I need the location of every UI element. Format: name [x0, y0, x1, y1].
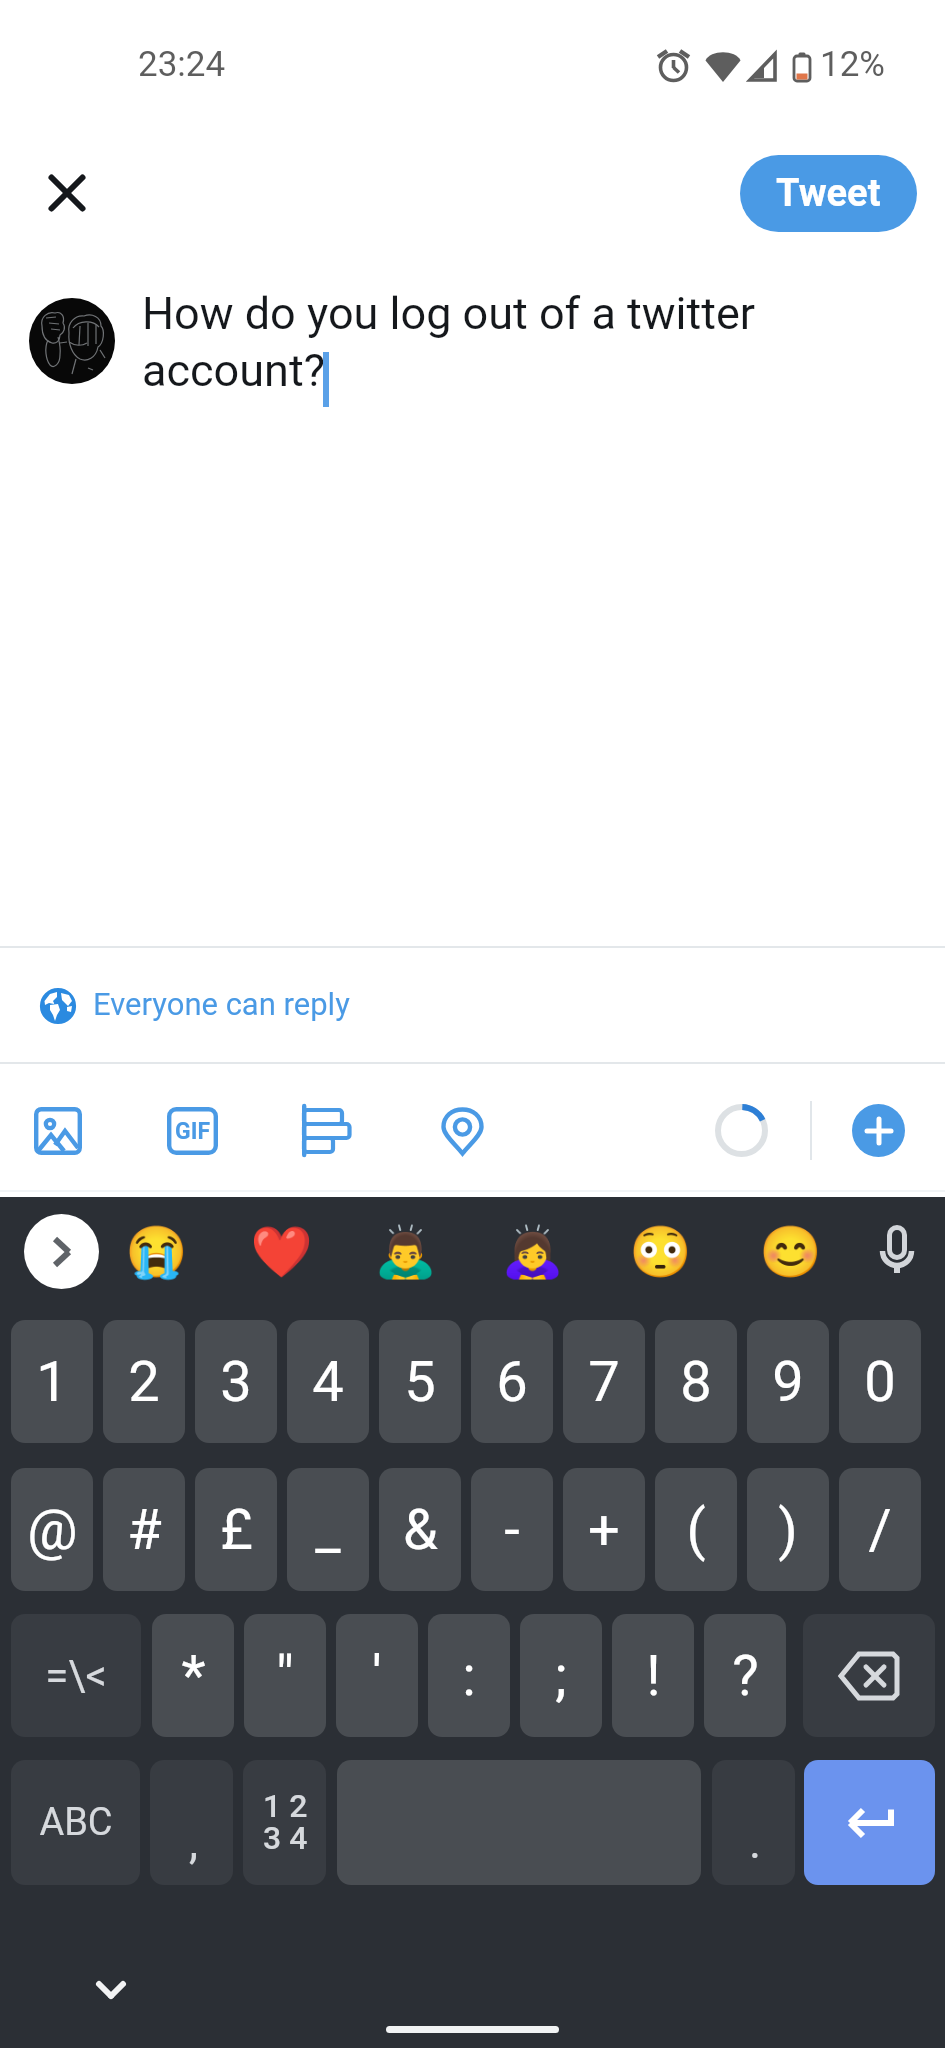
button[interactable]: . [712, 1760, 795, 1885]
button[interactable]: Add GIF [158, 1097, 226, 1165]
staticText: # [127, 1497, 162, 1563]
button[interactable]: Voice input [861, 1214, 932, 1285]
staticText: @ [27, 1497, 78, 1563]
staticText: ( [686, 1497, 706, 1563]
staticText: 2 [128, 1349, 160, 1415]
button[interactable]: @ [11, 1468, 93, 1591]
button[interactable]: + [563, 1468, 645, 1591]
staticText: ABC [39, 1800, 113, 1845]
staticText: 😭 [125, 1223, 188, 1282]
staticText: =\< [45, 1651, 107, 1700]
staticText: 🙇‍♀️ [501, 1223, 564, 1282]
staticText: : [462, 1643, 476, 1709]
button[interactable]: ABC [11, 1760, 140, 1885]
button[interactable]: Numbers [243, 1760, 326, 1885]
button[interactable]: " [244, 1614, 326, 1737]
button[interactable]: * [152, 1614, 234, 1737]
staticText: + [588, 1497, 620, 1563]
button[interactable]: Add poll [294, 1097, 362, 1165]
button[interactable]: Backspace [803, 1614, 935, 1737]
button[interactable]: 3 [195, 1320, 277, 1443]
button[interactable]: 0 [839, 1320, 921, 1443]
button[interactable]: # [103, 1468, 185, 1591]
button[interactable]: 5 [379, 1320, 461, 1443]
button[interactable]: Profile picture [29, 298, 115, 384]
button[interactable]: 2 [103, 1320, 185, 1443]
button[interactable]: £ [195, 1468, 277, 1591]
button[interactable]: Everyone can reply [0, 948, 945, 1062]
button[interactable]: 🙇‍♀️ [496, 1216, 568, 1288]
staticText: 23:24 [138, 44, 226, 85]
staticText: _ [315, 1497, 341, 1563]
staticText: Tweet [776, 171, 881, 216]
staticText: How do you log out of a twitter account? [142, 287, 756, 397]
staticText: ' [372, 1643, 382, 1709]
button[interactable]: 🙇‍♂️ [369, 1216, 441, 1288]
staticText: Everyone can reply [93, 986, 350, 1022]
staticText: 😊 [759, 1223, 822, 1282]
button[interactable]: ) [747, 1468, 829, 1591]
button[interactable]: 😭 [120, 1216, 192, 1288]
button[interactable]: Add location [428, 1097, 496, 1165]
staticText: 5 [404, 1349, 436, 1415]
button[interactable]: More emoji [24, 1214, 99, 1289]
staticText: & [403, 1497, 438, 1563]
button[interactable]: Add another tweet [852, 1104, 905, 1157]
staticText: 🙇‍♂️ [374, 1223, 437, 1282]
staticText: 3 4 [263, 1819, 308, 1857]
button[interactable]: _ [287, 1468, 369, 1591]
button[interactable]: ? [704, 1614, 786, 1737]
staticText: 9 [772, 1349, 804, 1415]
button[interactable]: 6 [471, 1320, 553, 1443]
staticText: . [749, 1815, 762, 1869]
staticText: £ [220, 1497, 253, 1563]
button[interactable]: =\< [11, 1614, 141, 1737]
staticText: ! [646, 1643, 661, 1709]
staticText: GIF [175, 1118, 210, 1145]
button[interactable]: - [471, 1468, 553, 1591]
button[interactable]: 9 [747, 1320, 829, 1443]
staticText: 12% [820, 44, 885, 85]
button[interactable]: 8 [655, 1320, 737, 1443]
staticText: ? [732, 1643, 759, 1709]
button[interactable]: Hide keyboard [71, 1950, 151, 2030]
button[interactable]: How do you log out of a twitter account? [142, 287, 822, 417]
button[interactable]: ! [612, 1614, 694, 1737]
button[interactable]: & [379, 1468, 461, 1591]
staticText: 6 [496, 1349, 528, 1415]
button[interactable]: Enter [804, 1760, 935, 1885]
staticText: * [181, 1643, 206, 1709]
staticText: / [868, 1497, 892, 1563]
button[interactable]: ❤️ [245, 1216, 317, 1288]
staticText: ; [555, 1643, 567, 1709]
staticText: , [189, 1815, 199, 1869]
button[interactable]: ; [520, 1614, 602, 1737]
staticText: 1 [36, 1349, 68, 1415]
staticText: - [504, 1497, 520, 1563]
button[interactable]: ' [336, 1614, 418, 1737]
button[interactable]: Tweet [740, 155, 917, 232]
staticText: " [276, 1643, 294, 1709]
button[interactable]: 😊 [754, 1216, 826, 1288]
staticText: ❤️ [250, 1223, 313, 1282]
button[interactable]: ( [655, 1468, 737, 1591]
button[interactable]: 7 [563, 1320, 645, 1443]
button[interactable]: Add photo [24, 1097, 92, 1165]
staticText: 4 [312, 1349, 344, 1415]
staticText: 😳 [629, 1223, 692, 1282]
staticText: 3 [220, 1349, 252, 1415]
button[interactable]: 4 [287, 1320, 369, 1443]
button[interactable]: Close [27, 153, 107, 233]
staticText: 7 [588, 1349, 620, 1415]
button[interactable]: 1 [11, 1320, 93, 1443]
button[interactable]: / [839, 1468, 921, 1591]
staticText: ) [778, 1497, 798, 1563]
button[interactable]: , [150, 1760, 233, 1885]
button[interactable]: 😳 [624, 1216, 696, 1288]
staticText: 8 [680, 1349, 712, 1415]
staticText: 0 [864, 1349, 896, 1415]
button[interactable]: : [428, 1614, 510, 1737]
staticText: 1 2 [263, 1787, 308, 1825]
